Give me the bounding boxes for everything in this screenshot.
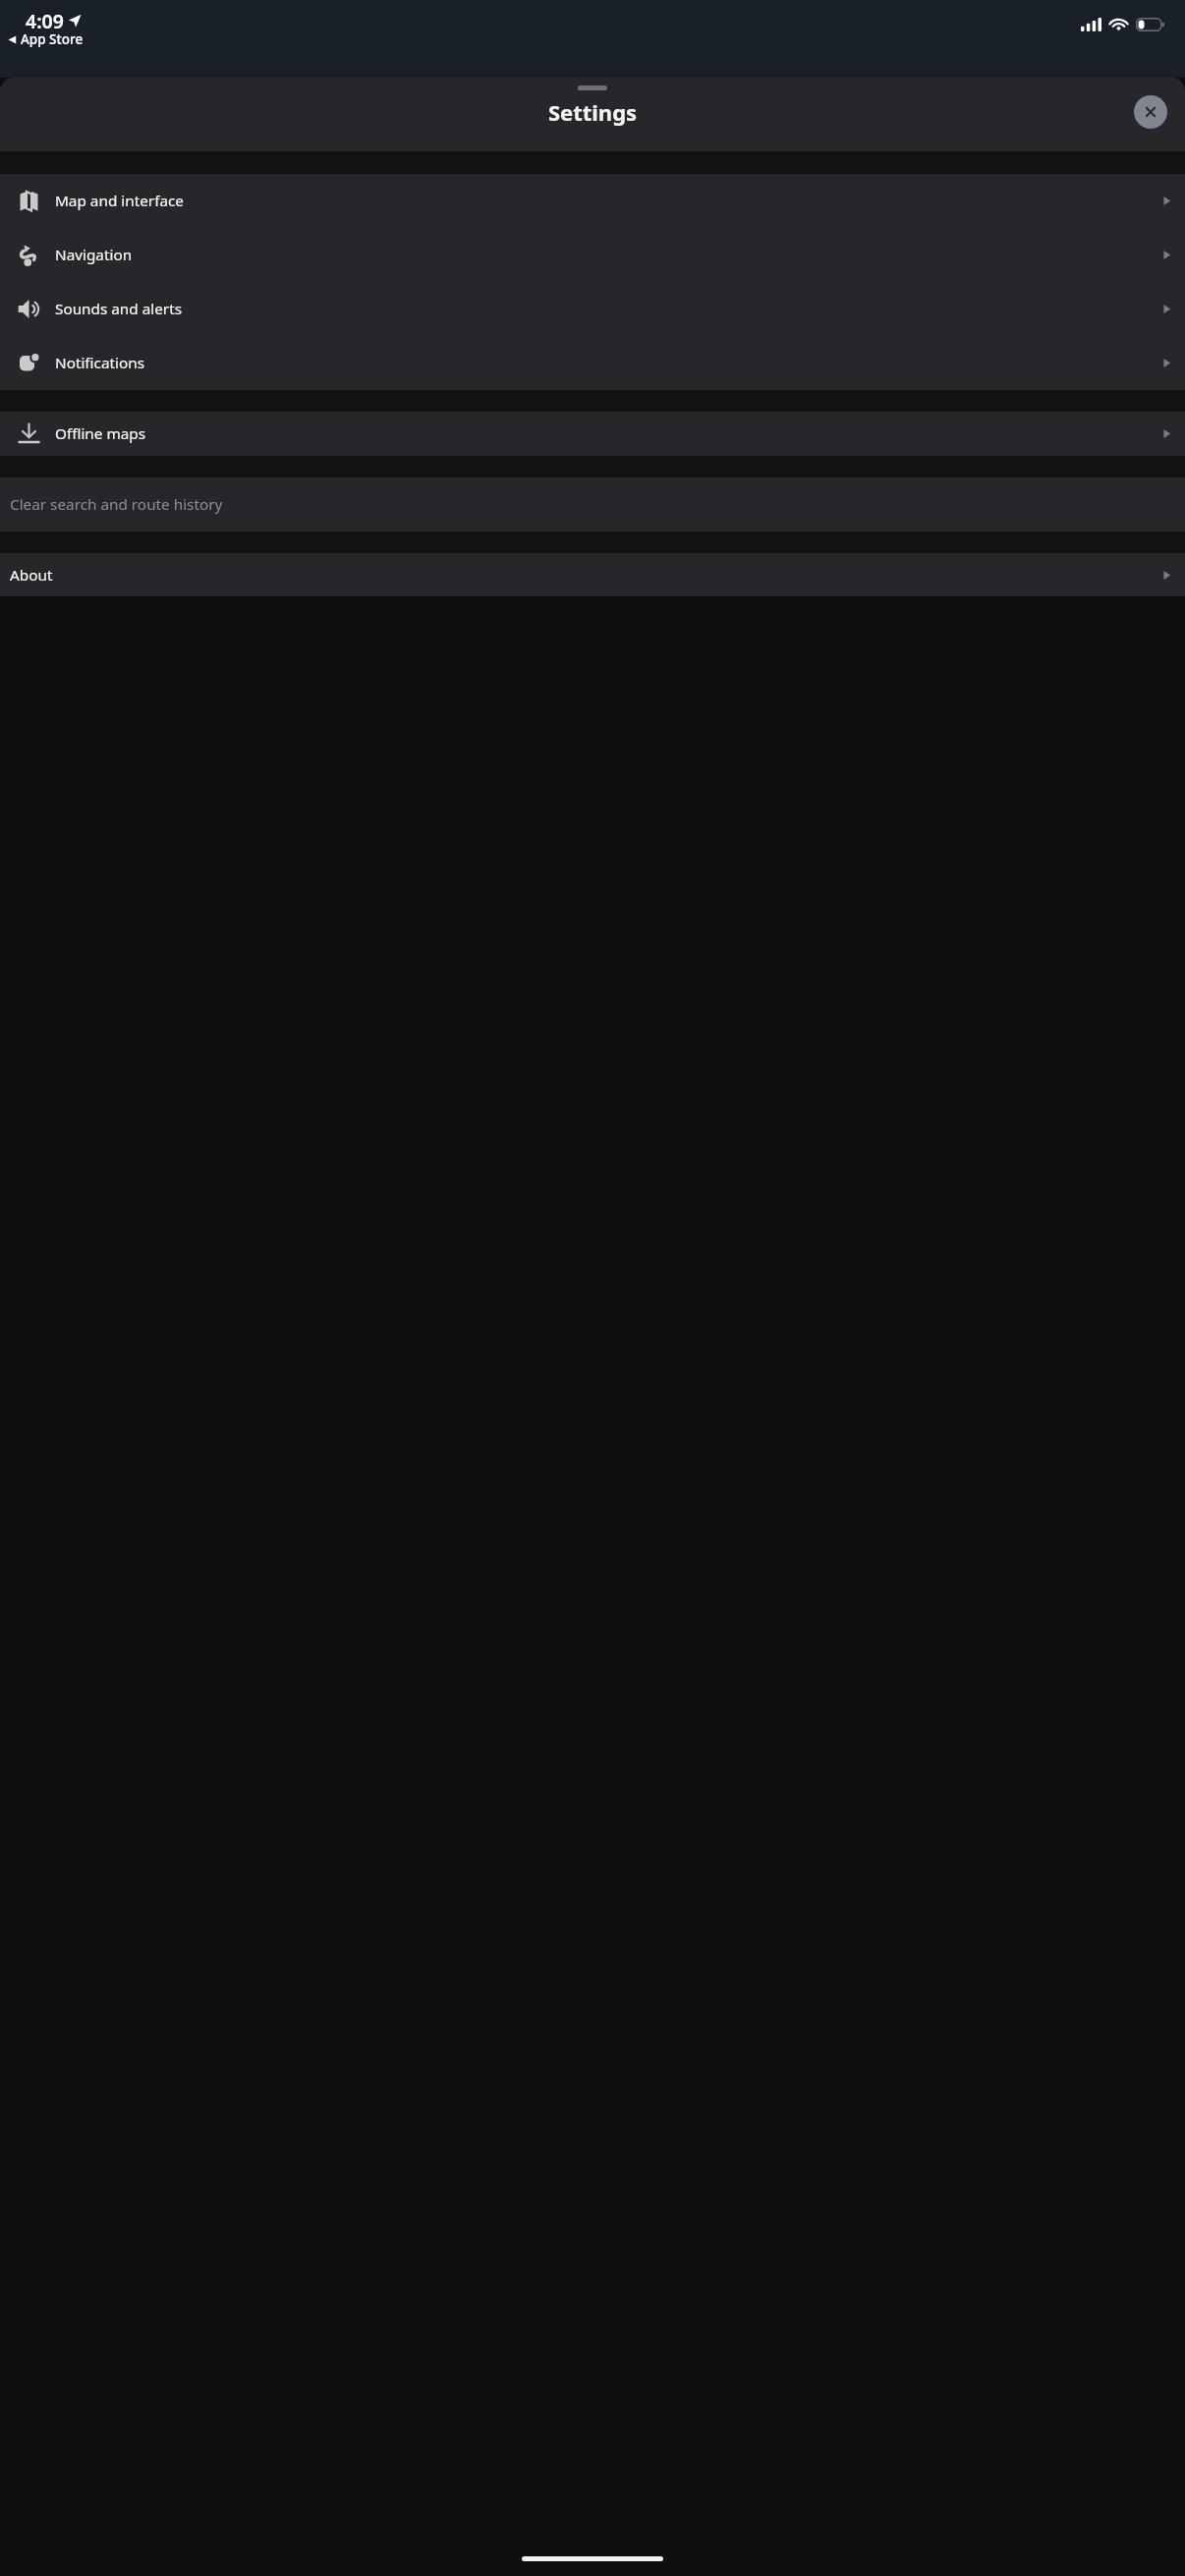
staticText: Notifications — [55, 353, 144, 373]
staticText: Settings — [0, 97, 1185, 127]
staticText: About — [10, 565, 53, 586]
staticText: Clear search and route history — [10, 494, 223, 515]
button[interactable]: Notifications — [0, 336, 1185, 390]
staticText: App Store — [21, 30, 84, 48]
button[interactable]: Map and interface — [0, 174, 1185, 228]
staticText: 4:09 — [26, 8, 64, 34]
button[interactable]: Navigation — [0, 228, 1185, 282]
staticText: Offline maps — [55, 423, 146, 444]
button[interactable]: Close — [1134, 95, 1167, 129]
staticText: Navigation — [55, 245, 133, 265]
button[interactable]: Clear search and route history — [0, 477, 1185, 532]
button[interactable]: Sounds and alerts — [0, 282, 1185, 336]
button[interactable]: Offline maps — [0, 412, 1185, 456]
button[interactable]: About — [0, 553, 1185, 596]
staticText: Sounds and alerts — [55, 299, 183, 319]
staticText: Map and interface — [55, 191, 184, 211]
